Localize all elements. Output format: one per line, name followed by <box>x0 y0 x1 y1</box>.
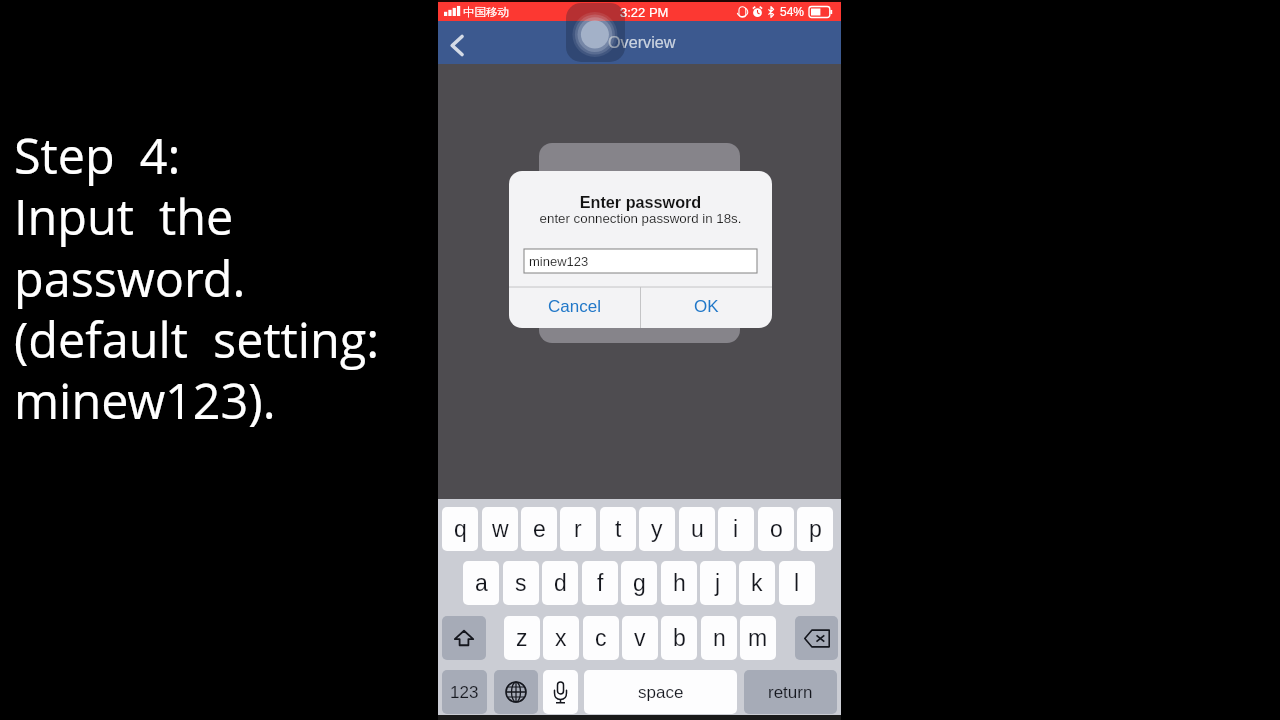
staticText: m <box>748 625 768 651</box>
staticText: return <box>768 683 813 702</box>
staticText: t <box>615 516 622 542</box>
button[interactable]: o <box>758 507 794 551</box>
staticText: (default setting: <box>14 306 380 372</box>
staticText: k <box>751 570 763 596</box>
staticText: Step 4: <box>14 122 181 188</box>
button[interactable]: f <box>582 561 618 605</box>
staticText: r <box>574 516 582 542</box>
button[interactable]: b <box>661 616 697 660</box>
staticText: c <box>595 625 607 651</box>
staticText: b <box>673 625 686 651</box>
staticText: h <box>673 570 686 596</box>
staticText: i <box>733 516 739 542</box>
staticText: Overview <box>608 33 676 51</box>
staticText: minew123). <box>14 367 276 433</box>
button[interactable]: c <box>583 616 619 660</box>
staticText: Enter password <box>509 193 772 211</box>
button[interactable]: OK <box>640 287 772 328</box>
staticText: e <box>533 516 546 542</box>
button[interactable] <box>494 670 538 714</box>
staticText: w <box>492 516 509 542</box>
button[interactable]: return <box>744 670 837 714</box>
button[interactable]: u <box>679 507 715 551</box>
button[interactable]: Cancel <box>509 287 640 328</box>
button[interactable]: n <box>701 616 737 660</box>
staticText: password. <box>14 245 246 311</box>
button[interactable]: s <box>503 561 539 605</box>
staticText: space <box>638 683 684 702</box>
button[interactable]: v <box>622 616 658 660</box>
button[interactable]: z <box>504 616 540 660</box>
button[interactable]: g <box>621 561 657 605</box>
staticText: 3:22 PM <box>620 5 669 20</box>
staticText: v <box>634 625 646 651</box>
staticText: s <box>515 570 527 596</box>
button[interactable]: q <box>442 507 478 551</box>
button[interactable] <box>795 616 838 660</box>
staticText: p <box>809 516 822 542</box>
button[interactable]: i <box>718 507 754 551</box>
button[interactable] <box>543 670 578 714</box>
staticText: x <box>555 625 567 651</box>
button[interactable]: x <box>543 616 579 660</box>
staticText: enter connection password in 18s. <box>509 211 772 226</box>
staticText: 中国移动 <box>463 5 509 19</box>
staticText: j <box>715 570 721 596</box>
staticText: l <box>794 570 800 596</box>
button[interactable]: e <box>521 507 557 551</box>
staticText: 54% <box>780 5 805 18</box>
staticText: minew123 <box>529 254 589 269</box>
button[interactable]: a <box>463 561 499 605</box>
button[interactable]: t <box>600 507 636 551</box>
staticText: Cancel <box>548 297 601 316</box>
button[interactable]: space <box>584 670 737 714</box>
button[interactable]: y <box>639 507 675 551</box>
staticText: n <box>713 625 726 651</box>
staticText: OK <box>694 297 719 316</box>
button[interactable] <box>442 616 486 660</box>
button[interactable]: r <box>560 507 596 551</box>
button[interactable]: m <box>740 616 776 660</box>
button[interactable]: Back <box>442 30 472 60</box>
button[interactable]: d <box>542 561 578 605</box>
staticText: z <box>516 625 528 651</box>
button[interactable]: h <box>661 561 697 605</box>
staticText: u <box>691 516 704 542</box>
button[interactable]: l <box>779 561 815 605</box>
staticText: o <box>770 516 783 542</box>
staticText: f <box>597 570 604 596</box>
staticText: q <box>454 516 467 542</box>
staticText: y <box>651 516 663 542</box>
staticText: Input the <box>14 183 234 249</box>
staticText: 123 <box>450 683 479 702</box>
button[interactable]: w <box>482 507 518 551</box>
staticText: d <box>554 570 567 596</box>
staticText: g <box>633 570 646 596</box>
button[interactable]: 123 <box>442 670 487 714</box>
button[interactable]: k <box>739 561 775 605</box>
staticText: a <box>475 570 488 596</box>
button[interactable]: j <box>700 561 736 605</box>
button[interactable]: p <box>797 507 833 551</box>
